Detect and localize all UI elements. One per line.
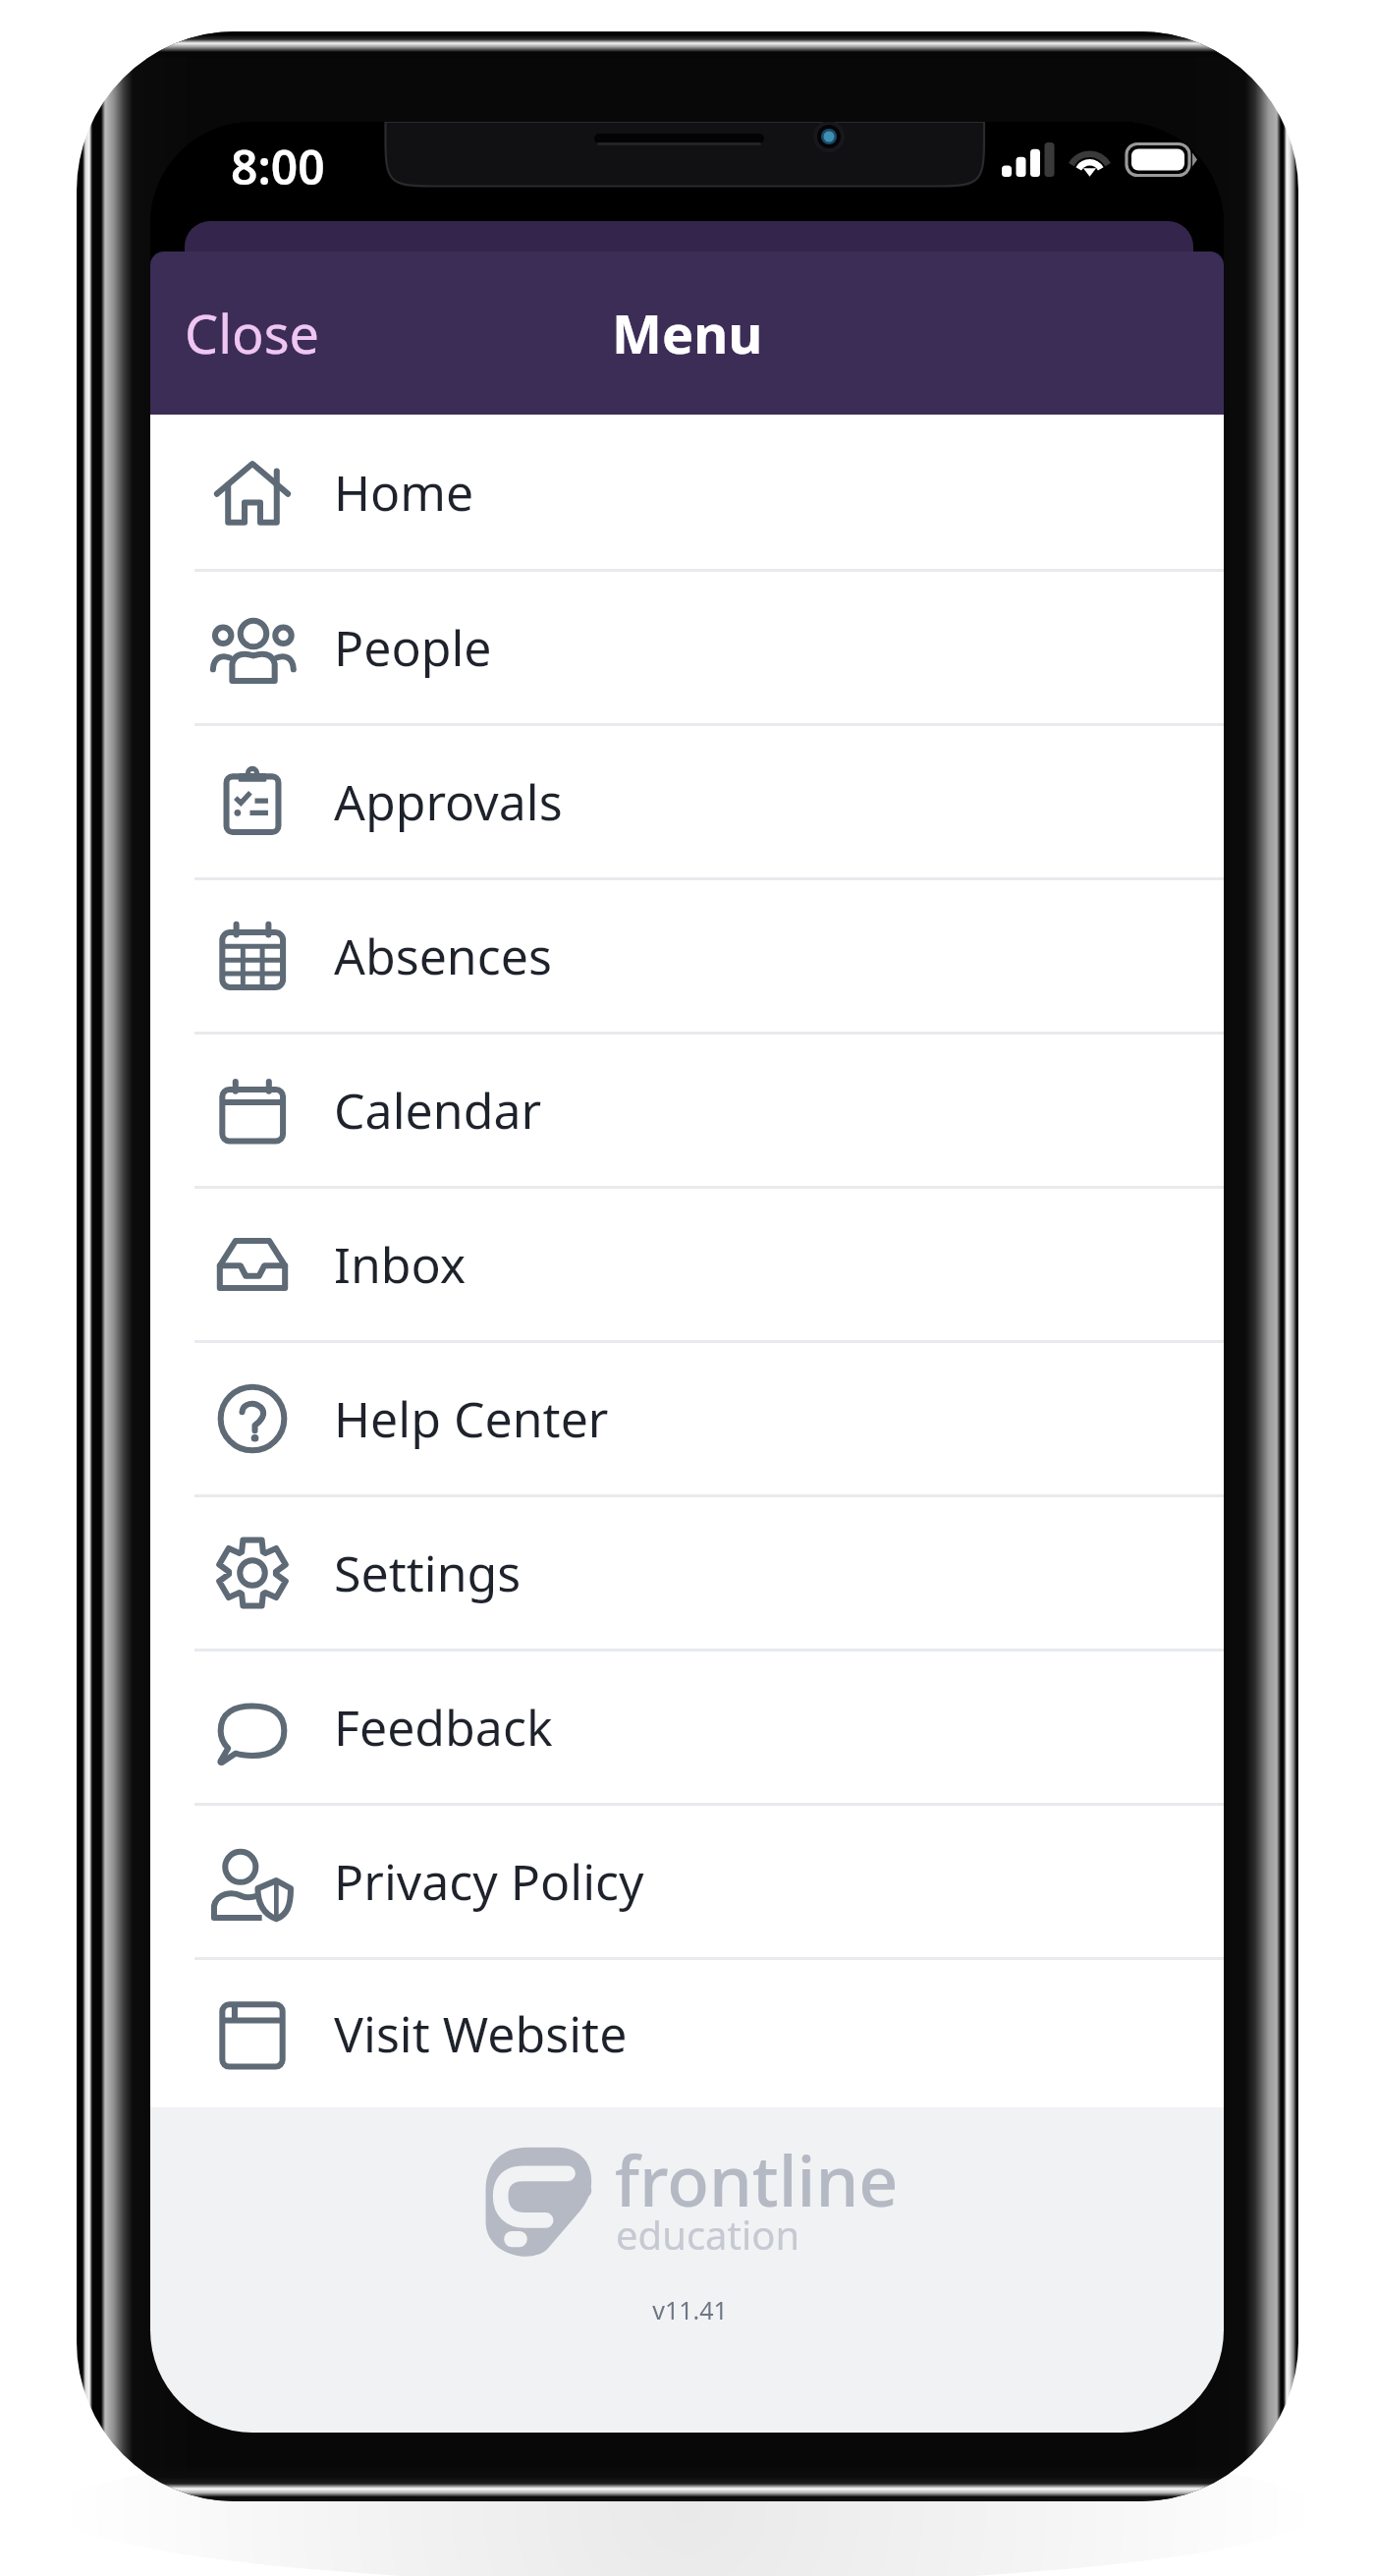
- staticText: Feedback: [334, 1694, 553, 1761]
- button[interactable]: Visit Website: [150, 1960, 1224, 2107]
- staticText: Help Center: [334, 1385, 609, 1452]
- staticText: Absences: [334, 923, 552, 989]
- button[interactable]: Settings: [150, 1497, 1224, 1649]
- button[interactable]: Calendar: [150, 1035, 1224, 1186]
- staticText: v11.41: [153, 2293, 1224, 2326]
- button[interactable]: Privacy Policy: [150, 1806, 1224, 1957]
- staticText: Settings: [334, 1540, 522, 1606]
- staticText: Visit Website: [334, 2000, 628, 2067]
- button[interactable]: Feedback: [150, 1652, 1224, 1803]
- button[interactable]: Inbox: [150, 1189, 1224, 1340]
- button[interactable]: Approvals: [150, 726, 1224, 877]
- staticText: People: [334, 614, 492, 681]
- staticText: Close: [185, 297, 320, 369]
- button[interactable]: Absences: [150, 880, 1224, 1032]
- staticText: Privacy Policy: [334, 1848, 644, 1915]
- button[interactable]: Close menu: [150, 269, 354, 397]
- staticText: Menu: [612, 297, 763, 369]
- staticText: frontline: [615, 2133, 899, 2226]
- staticText: Home: [334, 459, 474, 526]
- staticText: 8:00: [231, 135, 325, 198]
- staticText: Calendar: [334, 1077, 542, 1144]
- staticText: Approvals: [334, 768, 563, 835]
- button[interactable]: Home: [150, 415, 1224, 569]
- staticText: Inbox: [334, 1231, 467, 1298]
- button[interactable]: People: [150, 572, 1224, 723]
- staticText: education: [616, 2208, 800, 2261]
- button[interactable]: Help Center: [150, 1343, 1224, 1494]
